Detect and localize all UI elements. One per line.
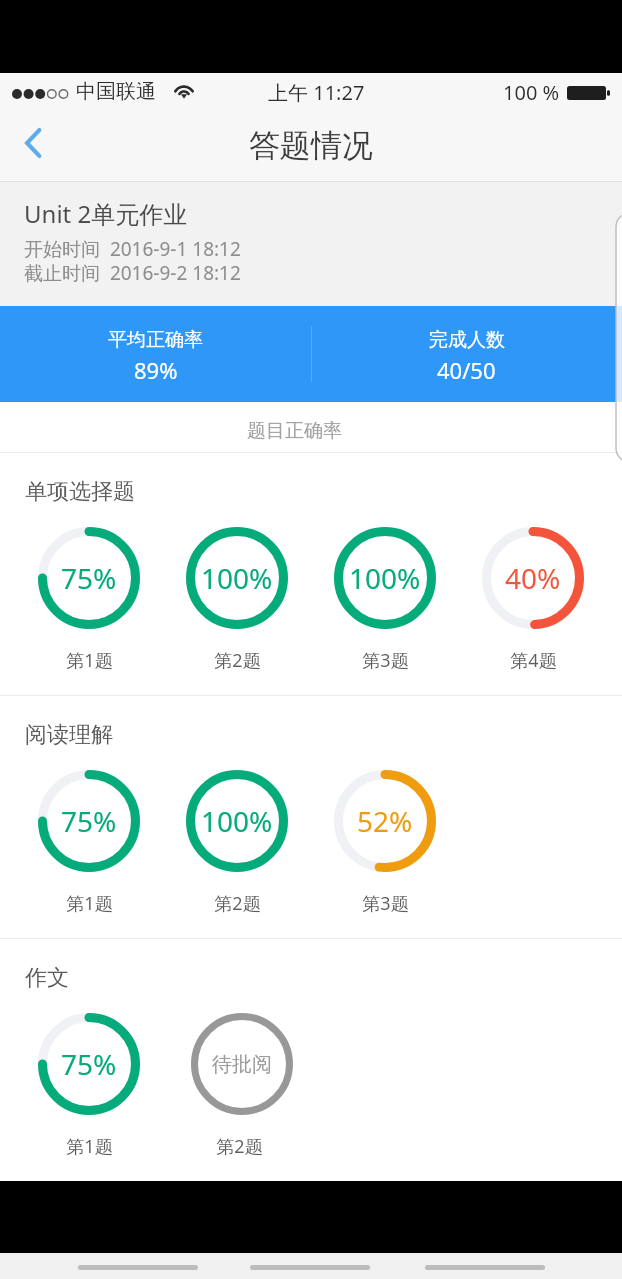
staticText: 第1题 xyxy=(66,891,113,916)
staticText: 第1题 xyxy=(66,1134,113,1159)
button[interactable]: 40% xyxy=(482,527,584,629)
button[interactable]: Back xyxy=(9,119,57,167)
staticText: 第4题 xyxy=(510,648,557,673)
staticText: Unit 2单元作业 xyxy=(24,197,188,230)
staticText: 75% xyxy=(61,802,117,840)
button[interactable]: 第1题 xyxy=(38,890,140,916)
staticText: 开始时间 2016-9-1 18:12 xyxy=(24,236,241,262)
button[interactable]: System navigation xyxy=(250,1265,370,1270)
button[interactable]: 平均正确率 xyxy=(0,306,311,402)
button[interactable]: 100% xyxy=(186,770,288,872)
button[interactable]: 第2题 xyxy=(188,1133,290,1159)
staticText: 89% xyxy=(134,355,178,385)
button[interactable]: 第3题 xyxy=(334,890,436,916)
button[interactable]: 第1题 xyxy=(38,1133,140,1159)
staticText: 题目正确率 xyxy=(247,419,342,443)
button[interactable]: System navigation xyxy=(78,1265,198,1270)
button[interactable]: 100% xyxy=(186,527,288,629)
button[interactable]: System navigation xyxy=(425,1265,545,1270)
staticText: 100% xyxy=(349,559,421,597)
staticText: 100% xyxy=(201,559,273,597)
button[interactable]: 待批阅 xyxy=(191,1013,293,1115)
button[interactable]: 75% xyxy=(38,1013,140,1115)
staticText: 100 % xyxy=(503,79,560,106)
staticText: 40% xyxy=(505,559,561,597)
staticText: 75% xyxy=(61,1045,117,1083)
staticText: 待批阅 xyxy=(212,1052,272,1077)
staticText: 40/50 xyxy=(437,355,496,385)
staticText: 截止时间 2016-9-2 18:12 xyxy=(24,260,241,286)
staticText: 第2题 xyxy=(214,891,261,916)
staticText: 第3题 xyxy=(362,648,409,673)
button[interactable]: 第2题 xyxy=(186,890,288,916)
staticText: 单项选择题 xyxy=(25,478,135,506)
button[interactable]: 75% xyxy=(38,527,140,629)
button[interactable]: 第2题 xyxy=(186,647,288,673)
staticText: 中国联通 xyxy=(76,79,156,104)
button[interactable]: 第3题 xyxy=(334,647,436,673)
button[interactable]: 第1题 xyxy=(38,647,140,673)
staticText: 答题情况 xyxy=(249,126,373,165)
staticText: 52% xyxy=(357,802,413,840)
staticText: 平均正确率 xyxy=(108,328,203,352)
staticText: 第3题 xyxy=(362,891,409,916)
button[interactable]: 题目正确率 xyxy=(247,419,342,443)
staticText: 阅读理解 xyxy=(25,721,113,749)
staticText: 完成人数 xyxy=(429,328,505,352)
staticText: 75% xyxy=(61,559,117,597)
button[interactable]: 52% xyxy=(334,770,436,872)
staticText: 100% xyxy=(201,802,273,840)
button[interactable]: 100% xyxy=(334,527,436,629)
staticText: 第1题 xyxy=(66,648,113,673)
staticText: 上午 11:27 xyxy=(268,79,365,106)
button[interactable]: 75% xyxy=(38,770,140,872)
button[interactable]: 第4题 xyxy=(482,647,584,673)
staticText: 作文 xyxy=(25,964,69,992)
button[interactable]: 完成人数 xyxy=(311,306,622,402)
staticText: 第2题 xyxy=(216,1134,263,1159)
staticText: 第2题 xyxy=(214,648,261,673)
